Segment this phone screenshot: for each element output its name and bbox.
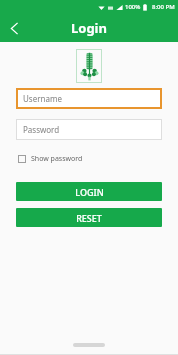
staticText: LOGIN <box>75 186 104 198</box>
button[interactable]: Password <box>16 119 162 140</box>
staticText: Username <box>23 93 62 104</box>
staticText: Password <box>23 124 60 135</box>
button[interactable]: Username <box>16 88 162 109</box>
staticText: Login <box>71 19 107 37</box>
staticText: 100% <box>125 3 141 11</box>
staticText: RESET <box>76 212 102 224</box>
button[interactable]: Show password <box>16 152 85 166</box>
button[interactable]: Back <box>0 14 28 42</box>
button[interactable]: LOGIN <box>16 182 162 201</box>
staticText: Show password <box>31 154 83 164</box>
button[interactable]: RESET <box>16 208 162 227</box>
staticText: 8:00 PM <box>152 3 175 11</box>
